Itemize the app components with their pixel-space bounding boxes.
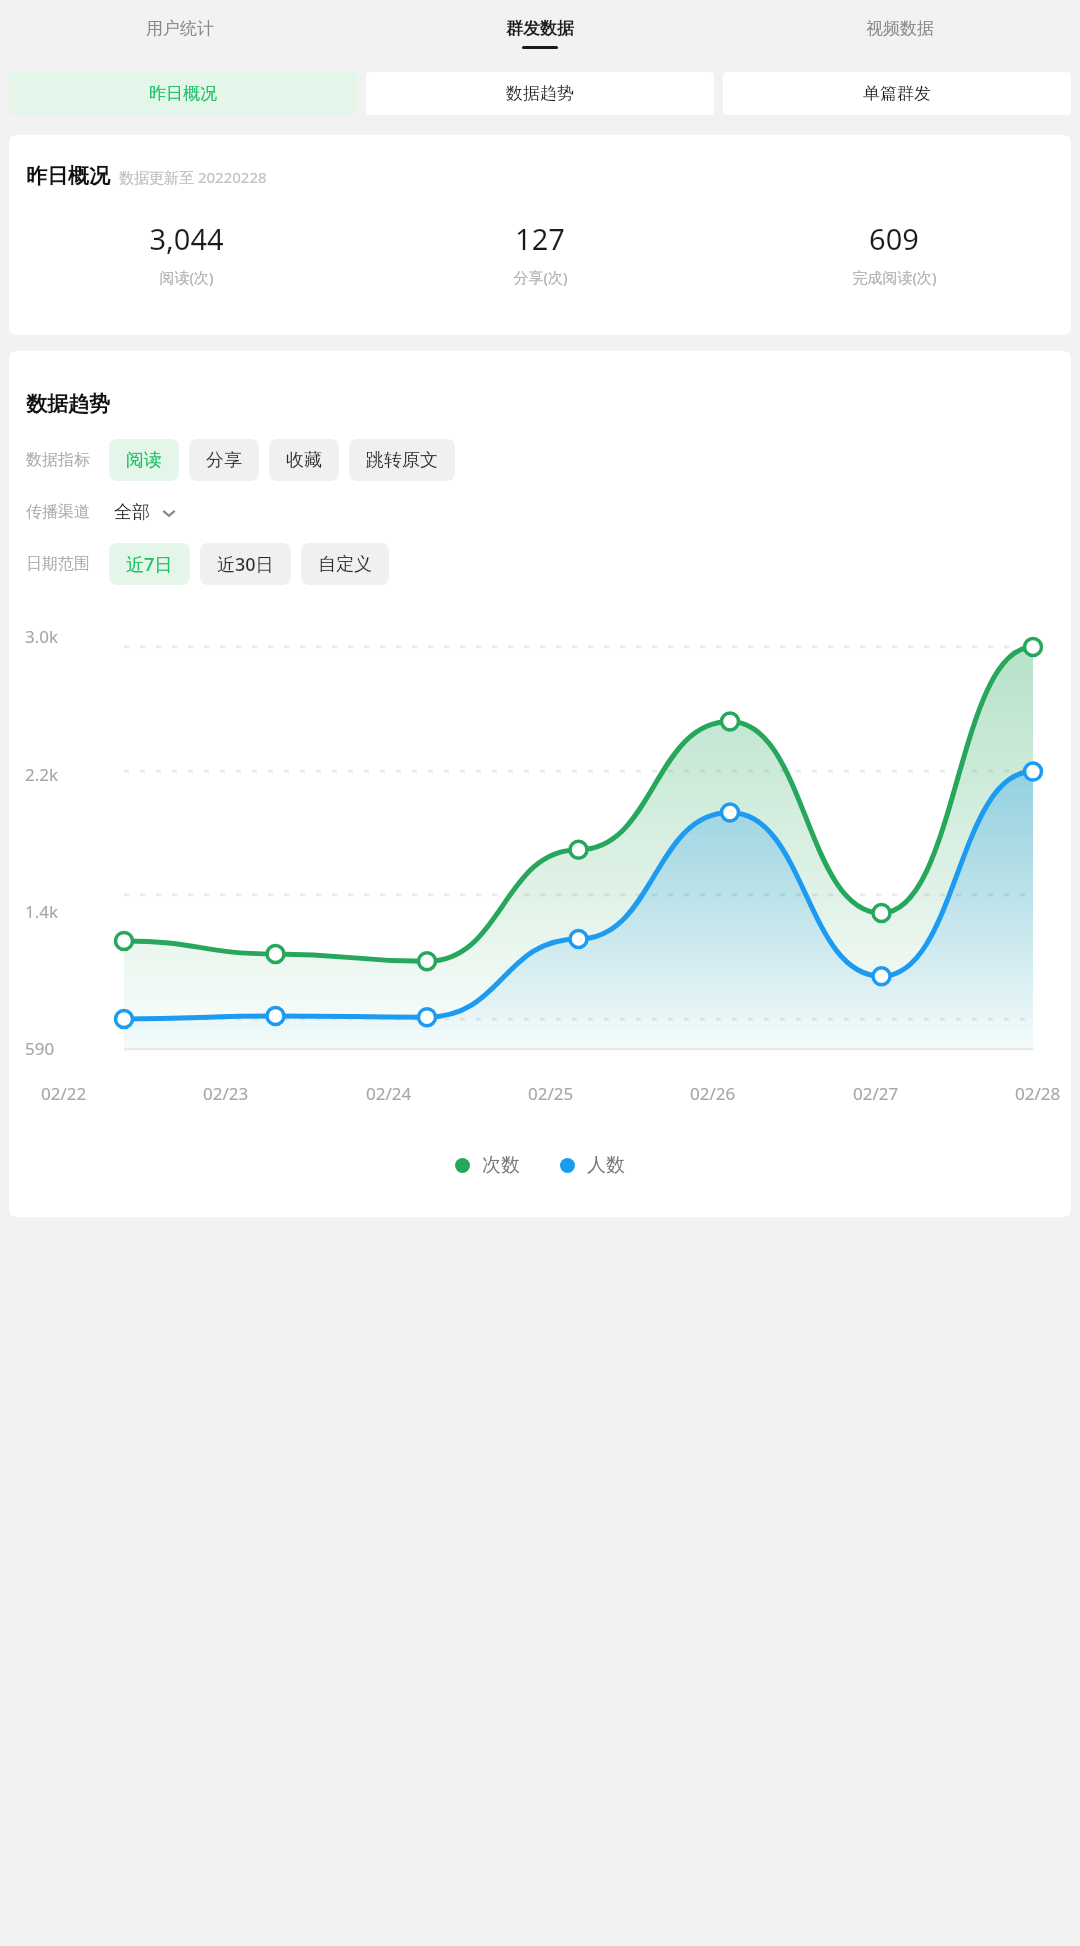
staticText: 视频数据 xyxy=(866,18,934,39)
staticText: 02/22 xyxy=(41,1082,87,1105)
staticText: 单篇群发 xyxy=(863,83,931,104)
staticText: 02/25 xyxy=(528,1082,574,1105)
staticText: 用户统计 xyxy=(146,18,214,39)
staticText: 阅读(次) xyxy=(159,267,214,287)
button[interactable]: 阅读 xyxy=(109,439,179,481)
button[interactable]: 视频数据 xyxy=(720,0,1080,66)
button[interactable]: 自定义 xyxy=(301,543,389,585)
staticText: 数据趋势 xyxy=(26,391,110,417)
staticText: 1.4k xyxy=(25,900,59,923)
button[interactable]: 近30日 xyxy=(200,543,291,585)
staticText: 日期范围 xyxy=(26,554,90,574)
staticText: 02/27 xyxy=(853,1082,899,1105)
button[interactable]: 数据趋势 xyxy=(366,72,714,115)
staticText: 02/28 xyxy=(1015,1082,1061,1105)
button[interactable]: 全部 xyxy=(114,501,178,524)
button[interactable]: 收藏 xyxy=(269,439,339,481)
staticText: 590 xyxy=(25,1037,55,1060)
staticText: 跳转原文 xyxy=(366,449,438,472)
staticText: 近7日 xyxy=(126,552,173,577)
staticText: 次数 xyxy=(482,1153,520,1177)
button[interactable]: 127 xyxy=(363,219,717,287)
staticText: 数据更新至 20220228 xyxy=(119,167,267,187)
staticText: 完成阅读(次) xyxy=(852,267,937,287)
staticText: 全部 xyxy=(114,501,150,524)
staticText: 人数 xyxy=(587,1153,625,1177)
button[interactable]: 分享 xyxy=(189,439,259,481)
button[interactable]: 群发数据 xyxy=(360,0,720,66)
staticText: 阅读 xyxy=(126,449,162,472)
staticText: 02/24 xyxy=(366,1082,412,1105)
staticText: 分享 xyxy=(206,449,242,472)
button[interactable]: 用户统计 xyxy=(0,0,360,66)
staticText: 3,044 xyxy=(149,219,224,258)
staticText: 自定义 xyxy=(318,553,372,576)
button[interactable]: 昨日概况 xyxy=(9,72,357,115)
staticText: 收藏 xyxy=(286,449,322,472)
button[interactable]: 近7日 xyxy=(109,543,190,585)
staticText: 127 xyxy=(515,219,565,258)
button[interactable]: 次数 xyxy=(455,1153,520,1177)
button[interactable]: 单篇群发 xyxy=(723,72,1071,115)
staticText: 昨日概况 xyxy=(26,163,110,189)
staticText: 2.2k xyxy=(25,763,59,786)
staticText: 609 xyxy=(869,219,919,258)
staticText: 数据指标 xyxy=(26,450,90,470)
button[interactable]: 人数 xyxy=(560,1153,625,1177)
staticText: 02/23 xyxy=(203,1082,249,1105)
other: 展开渠道 xyxy=(160,504,178,522)
staticText: 数据趋势 xyxy=(506,83,574,104)
staticText: 02/26 xyxy=(690,1082,736,1105)
staticText: 3.0k xyxy=(25,625,59,648)
staticText: 昨日概况 xyxy=(149,83,217,104)
staticText: 传播渠道 xyxy=(26,502,90,522)
button[interactable]: 跳转原文 xyxy=(349,439,455,481)
button[interactable]: 3,044 xyxy=(9,219,363,287)
staticText: 群发数据 xyxy=(506,18,574,39)
staticText: 分享(次) xyxy=(513,267,568,287)
staticText: 近30日 xyxy=(217,552,274,577)
button[interactable]: 609 xyxy=(717,219,1071,287)
